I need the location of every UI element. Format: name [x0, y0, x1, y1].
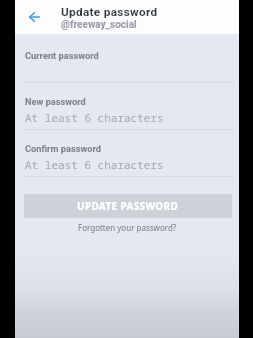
button[interactable]: Current password — [15, 34, 239, 83]
button[interactable]: Confirm password — [15, 130, 239, 177]
staticText: Confirm password — [25, 143, 101, 154]
button[interactable]: Forgotten your password? — [15, 222, 239, 233]
button[interactable]: UPDATE PASSWORD — [24, 194, 232, 218]
button[interactable]: New password — [15, 83, 239, 130]
staticText: Update password — [61, 5, 158, 19]
button[interactable]: Back — [24, 7, 44, 27]
staticText: Current password — [25, 50, 99, 61]
staticText: UPDATE PASSWORD — [77, 199, 179, 212]
staticText: Forgotten your password? — [78, 222, 177, 233]
staticText: New password — [25, 96, 86, 107]
staticText: At least 6 characters — [25, 110, 164, 125]
staticText: @freeway_social — [61, 19, 137, 31]
staticText: At least 6 characters — [25, 157, 164, 172]
